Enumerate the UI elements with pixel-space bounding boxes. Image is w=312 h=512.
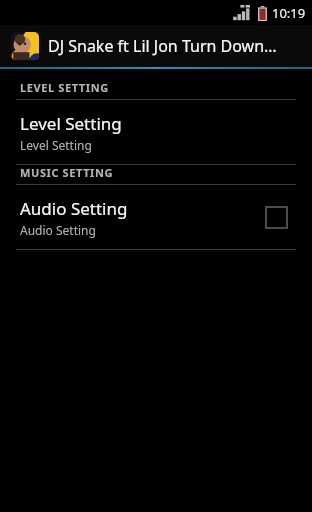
staticText: DJ Snake ft Lil Jon Turn Down…	[48, 35, 277, 57]
button[interactable]: DJ Snake ft Lil Jon Turn Down…	[0, 25, 312, 67]
staticText: LEVEL SETTING	[20, 80, 109, 95]
staticText: Audio Setting	[20, 222, 96, 238]
staticText: Level Setting	[20, 137, 92, 153]
button[interactable]: Level Setting	[0, 100, 312, 164]
staticText: MUSIC SETTING	[20, 165, 114, 180]
button[interactable]: Audio Setting	[0, 185, 312, 249]
staticText: Audio Setting	[20, 197, 128, 220]
staticText: Level Setting	[20, 112, 122, 135]
button[interactable]: Audio Setting checkbox	[258, 199, 294, 235]
staticText: 10:19	[272, 4, 306, 22]
